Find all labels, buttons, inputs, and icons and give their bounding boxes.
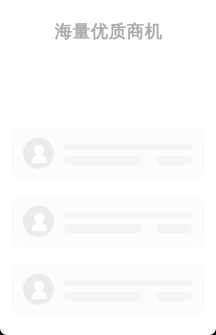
staticText: 海量优质商机	[54, 21, 161, 42]
button[interactable]	[10, 263, 206, 315]
button[interactable]	[10, 127, 206, 179]
button[interactable]	[10, 195, 206, 247]
